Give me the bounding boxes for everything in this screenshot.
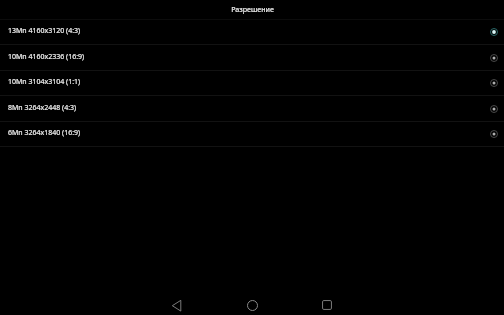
button[interactable]: 8Mn 3264x2448 (4:3) bbox=[0, 96, 504, 121]
button[interactable]: 10Mn 3104x3104 (1:1) bbox=[0, 71, 504, 95]
button[interactable]: 10Mn 4160x2336 (16:9) bbox=[0, 45, 504, 70]
staticText: 10Mn 3104x3104 (1:1) bbox=[8, 77, 81, 87]
staticText: 6Mn 3264x1840 (16:9) bbox=[8, 128, 81, 138]
staticText: 10Mn 4160x2336 (16:9) bbox=[8, 52, 85, 62]
button[interactable]: Recents bbox=[314, 292, 340, 315]
button[interactable]: 6Mn 3264x1840 (16:9) bbox=[0, 122, 504, 146]
staticText: 13Mn 4160x3120 (4:3) bbox=[8, 26, 81, 36]
button[interactable]: Back bbox=[164, 292, 190, 315]
button[interactable]: 13Mn 4160x3120 (4:3) bbox=[0, 20, 504, 44]
staticText: 8Mn 3264x2448 (4:3) bbox=[8, 103, 77, 113]
staticText: Разрешение bbox=[231, 4, 274, 14]
button[interactable]: Home bbox=[239, 292, 265, 315]
